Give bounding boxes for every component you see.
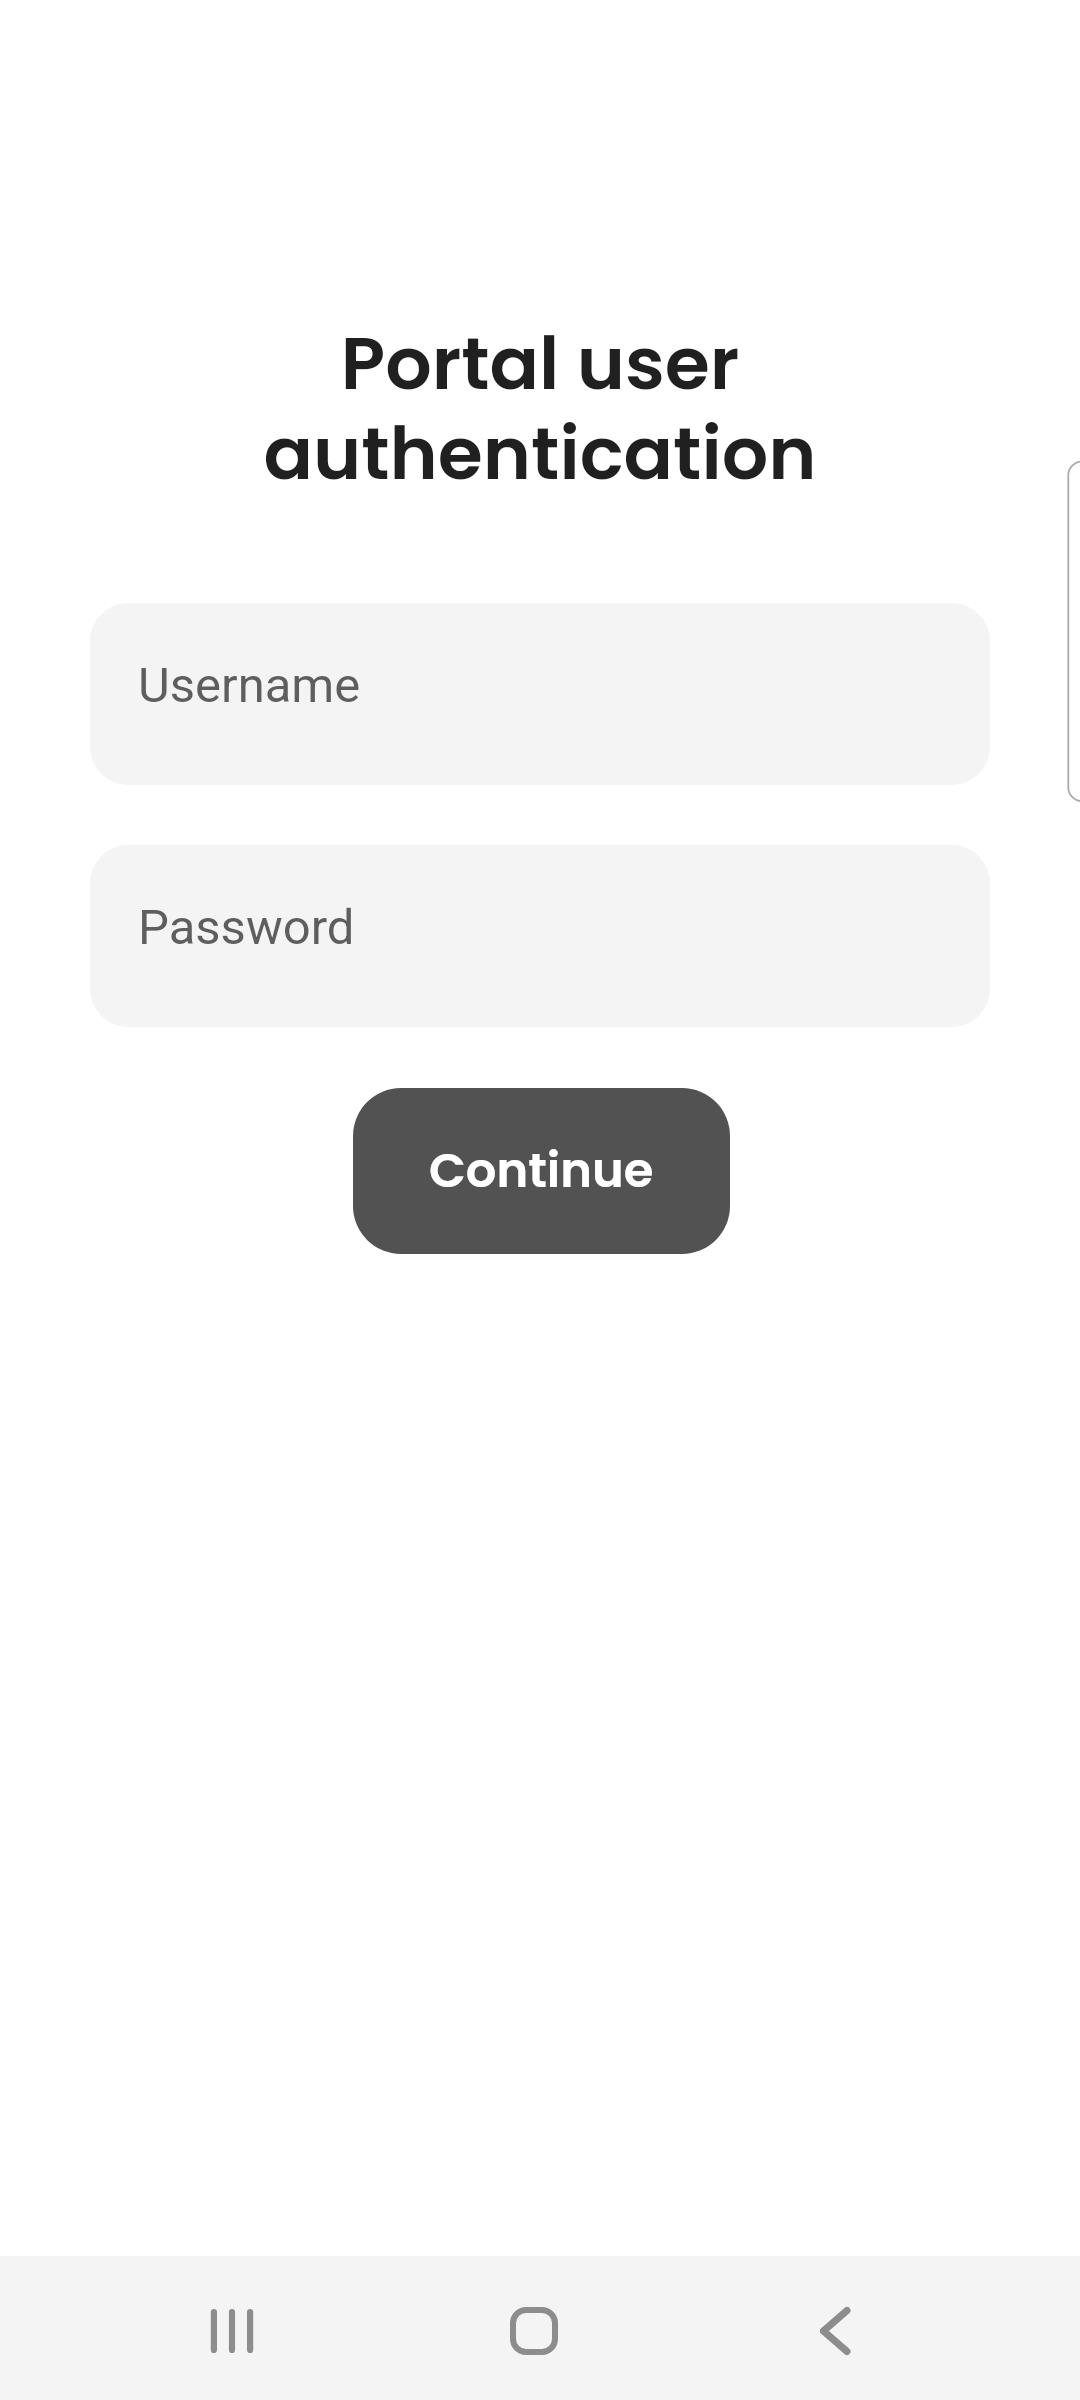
button[interactable]: Username bbox=[90, 603, 990, 785]
staticText: Password bbox=[138, 899, 355, 956]
staticText: Portal user authentication bbox=[0, 312, 1080, 505]
button[interactable]: Back bbox=[755, 2256, 915, 2400]
button[interactable]: Password bbox=[90, 845, 990, 1027]
button[interactable]: Recent apps bbox=[152, 2256, 312, 2400]
staticText: Username bbox=[138, 657, 361, 714]
button[interactable]: Home bbox=[454, 2256, 614, 2400]
staticText: Continue bbox=[429, 1137, 654, 1204]
button[interactable]: Continue bbox=[353, 1088, 730, 1254]
